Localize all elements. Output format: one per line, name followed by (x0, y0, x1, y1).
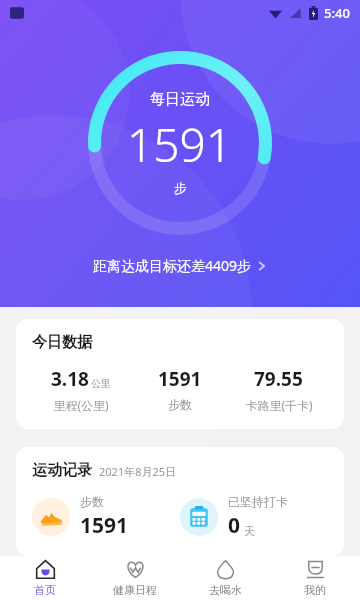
staticText: 2021年8月25日 (99, 464, 177, 479)
staticText: 我的 (304, 583, 326, 597)
staticText: 卡路里(千卡) (245, 397, 313, 413)
staticText: 今日数据 (32, 333, 92, 352)
staticText: 1591 (127, 113, 233, 176)
button[interactable]: 去喝水 (180, 556, 270, 600)
button[interactable]: 距离达成目标还差4409步 (83, 252, 278, 279)
staticText: 5:40 (324, 4, 350, 22)
staticText: 0 (228, 511, 241, 540)
staticText: 1591 (158, 366, 202, 392)
button[interactable]: 健康日程 (90, 556, 180, 600)
staticText: 里程(公里) (53, 397, 109, 413)
staticText: 去喝水 (209, 583, 242, 597)
staticText: 距离达成目标还差4409步 (93, 256, 252, 275)
staticText: 天 (244, 524, 255, 538)
staticText: 1591 (80, 511, 129, 540)
staticText: 首页 (34, 583, 56, 597)
staticText: 79.55 (254, 366, 303, 392)
staticText: 公里 (91, 377, 111, 390)
staticText: 运动记录 (32, 461, 92, 480)
staticText: 步数 (80, 494, 104, 509)
staticText: 步 (174, 180, 187, 196)
staticText: 健康日程 (113, 583, 157, 597)
button[interactable]: 我的 (270, 556, 360, 600)
staticText: 步数 (168, 397, 192, 412)
staticText: 每日运动 (150, 90, 210, 109)
button[interactable]: 运动记录 (16, 447, 344, 556)
button[interactable]: 今日数据 (16, 319, 344, 429)
staticText: 已坚持打卡 (228, 494, 288, 509)
button[interactable]: 首页 (0, 556, 90, 600)
staticText: 3.18 (51, 366, 89, 392)
